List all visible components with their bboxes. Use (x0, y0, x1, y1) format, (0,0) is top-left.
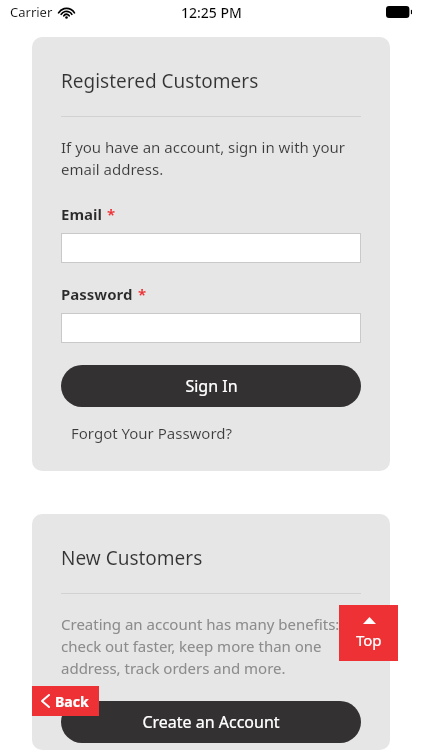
button[interactable]: Forgot Your Password? (71, 423, 233, 443)
staticText: Forgot Your Password? (71, 423, 233, 443)
button[interactable]: Sign In (61, 365, 361, 407)
staticText: * (107, 204, 116, 224)
staticText: Create an Account (142, 711, 280, 733)
button[interactable] (61, 313, 361, 343)
staticText: Email (61, 204, 102, 224)
staticText: Password (61, 284, 133, 304)
staticText: Carrier (10, 3, 53, 21)
button[interactable]: Create an Account (61, 701, 361, 743)
staticText: * (138, 284, 147, 304)
staticText: Back (55, 692, 89, 711)
button[interactable] (61, 233, 361, 263)
staticText: 12:25 PM (181, 3, 242, 22)
staticText: Creating an account has many benefits: c… (61, 614, 361, 679)
staticText: Registered Customers (61, 68, 259, 94)
button[interactable]: Scroll to top (339, 605, 398, 661)
button[interactable]: Back (32, 686, 99, 716)
staticText: Sign In (185, 375, 238, 397)
staticText: New Customers (61, 545, 203, 571)
staticText: Top (356, 630, 382, 650)
staticText: If you have an account, sign in with you… (61, 137, 361, 180)
